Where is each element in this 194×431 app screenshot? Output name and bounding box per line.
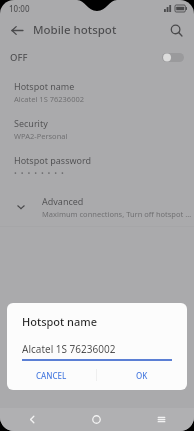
button[interactable]: Alcatel 1S 76236002 <box>22 342 172 361</box>
button[interactable]: Advanced <box>0 192 194 222</box>
staticText: OK <box>136 370 148 381</box>
button[interactable]: Hotspot name <box>0 80 194 104</box>
button[interactable]: CANCEL <box>7 361 96 389</box>
button[interactable]: Back <box>0 408 64 431</box>
staticText: Maximum connections, Turn off hotspot au… <box>42 209 194 219</box>
button[interactable]: OK <box>97 361 187 389</box>
staticText: Security <box>14 117 48 129</box>
staticText: Hotspot name <box>22 314 98 329</box>
staticText: Advanced <box>42 195 84 207</box>
staticText: OFF <box>10 51 28 64</box>
button[interactable]: Recent apps <box>129 408 194 431</box>
staticText: 10:00 <box>9 3 30 14</box>
button[interactable]: OFF <box>0 43 194 71</box>
staticText: CANCEL <box>36 370 67 381</box>
staticText: WPA2-Personal <box>14 131 68 141</box>
staticText: Alcatel 1S 76236002 <box>22 342 116 356</box>
staticText: Mobile hotspot <box>33 22 117 38</box>
button[interactable]: Back <box>4 17 30 43</box>
button[interactable]: Home <box>64 408 129 431</box>
button[interactable]: Security <box>0 117 194 141</box>
staticText: Hotspot password <box>14 154 92 166</box>
button[interactable]: Hotspot password <box>0 154 194 178</box>
staticText: Hotspot name <box>14 80 75 92</box>
button[interactable]: Search <box>164 18 188 42</box>
staticText: • • • • • • • • <box>14 168 64 178</box>
staticText: Alcatel 1S 76236002 <box>14 94 85 104</box>
